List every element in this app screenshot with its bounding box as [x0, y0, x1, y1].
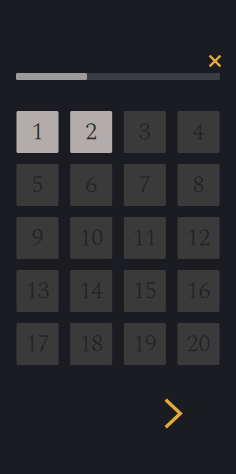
button[interactable]: Next question — [156, 390, 190, 437]
button[interactable]: 4 — [177, 111, 219, 153]
staticText: 7 — [139, 167, 151, 203]
button[interactable]: 15 — [124, 270, 166, 312]
button[interactable]: 3 — [124, 111, 166, 153]
button[interactable]: 14 — [70, 270, 112, 312]
button[interactable]: Close — [202, 48, 228, 74]
button[interactable]: 10 — [70, 217, 112, 259]
staticText: 4 — [192, 114, 204, 150]
staticText: 6 — [85, 167, 97, 203]
staticText: 15 — [133, 273, 157, 309]
button[interactable]: 2 — [70, 111, 112, 153]
staticText: 2 — [85, 114, 97, 150]
staticText: 9 — [31, 220, 43, 256]
button[interactable]: 18 — [70, 323, 112, 365]
staticText: 12 — [186, 220, 210, 256]
button[interactable]: 5 — [16, 164, 58, 206]
button[interactable]: 1 — [16, 111, 58, 153]
button[interactable]: 19 — [124, 323, 166, 365]
staticText: 8 — [192, 167, 204, 203]
staticText: 14 — [79, 273, 103, 309]
button[interactable]: 20 — [177, 323, 219, 365]
button[interactable]: 13 — [16, 270, 58, 312]
staticText: 5 — [31, 167, 43, 203]
staticText: 10 — [79, 220, 103, 256]
staticText: 18 — [79, 326, 103, 362]
staticText: 3 — [139, 114, 151, 150]
button[interactable]: 8 — [177, 164, 219, 206]
button[interactable]: 17 — [16, 323, 58, 365]
staticText: 20 — [186, 326, 210, 362]
button[interactable]: 12 — [177, 217, 219, 259]
button[interactable]: 9 — [16, 217, 58, 259]
staticText: 17 — [25, 326, 49, 362]
staticText: 1 — [31, 114, 43, 150]
staticText: 16 — [186, 273, 210, 309]
button[interactable]: 16 — [177, 270, 219, 312]
button[interactable]: 6 — [70, 164, 112, 206]
staticText: 19 — [133, 326, 157, 362]
staticText: 13 — [25, 273, 49, 309]
staticText: 11 — [133, 220, 157, 256]
button[interactable]: 11 — [124, 217, 166, 259]
